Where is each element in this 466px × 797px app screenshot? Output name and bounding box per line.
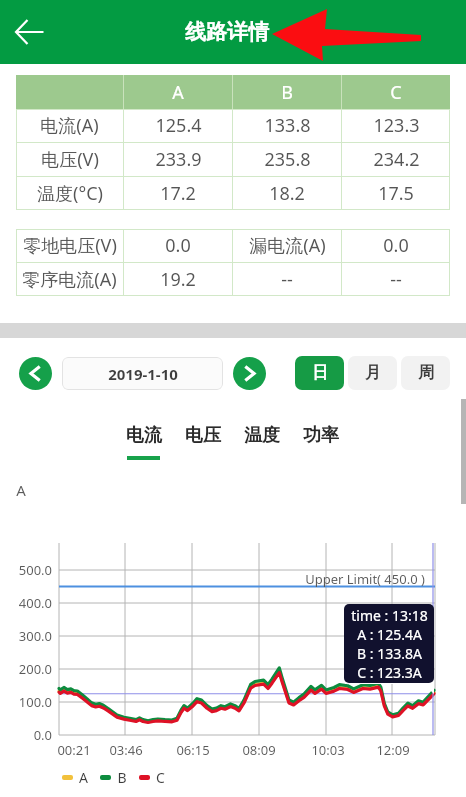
staticText: 月 [365,363,381,383]
staticText: 0.0 [0,726,52,744]
button[interactable]: Previous day [19,357,52,390]
button[interactable]: 周 [401,356,450,390]
staticText: 500.0 [0,561,52,579]
staticText: 日 [312,363,328,383]
staticText: 123.3 [373,113,420,138]
staticText: C [390,80,402,105]
staticText: 功率 [303,424,339,447]
staticText: B : 133.8A [357,644,422,663]
staticText: 10:03 [298,741,358,759]
button[interactable]: Next day [233,357,266,390]
staticText: 12:09 [363,741,423,759]
button[interactable]: 功率 [291,424,350,460]
staticText: A [79,768,88,787]
staticText: B [117,768,127,787]
staticText: -- [390,267,402,292]
staticText: 17.2 [160,181,196,206]
staticText: 漏电流(A) [249,233,326,258]
staticText: A : 125.4A [357,625,422,644]
staticText: 温度 [244,424,280,447]
staticText: -- [281,267,293,292]
staticText: B [281,80,293,105]
staticText: 08:09 [229,741,289,759]
button[interactable]: 电压 [173,424,232,460]
staticText: Upper Limit( 450.0 ) [305,570,425,588]
button[interactable]: 2019-1-10 [62,357,223,390]
staticText: 300.0 [0,627,52,645]
button[interactable]: 日 [295,356,344,390]
staticText: 19.2 [160,267,196,292]
staticText: 线路详情 [185,19,269,45]
staticText: time : 13:18 [351,606,428,625]
button[interactable]: 温度 [232,424,291,460]
staticText: C : 123.3A [357,663,422,682]
staticText: 125.4 [155,113,202,138]
staticText: 电压(V) [41,147,99,172]
staticText: 电流 [126,424,162,447]
staticText: 0.0 [165,233,191,258]
button[interactable]: 月 [348,356,397,390]
staticText: A [172,80,184,105]
staticText: 温度(°C) [37,181,103,206]
staticText: 2019-1-10 [108,364,178,384]
staticText: 200.0 [0,660,52,678]
staticText: C [156,768,165,787]
staticText: 零地电压(V) [23,233,117,258]
staticText: 17.5 [378,181,414,206]
staticText: 0.0 [383,233,409,258]
staticText: 03:46 [96,741,156,759]
staticText: 电压 [185,424,221,447]
staticText: 18.2 [269,181,305,206]
staticText: 零序电流(A) [22,267,117,292]
staticText: 电流(A) [40,113,99,138]
staticText: 400.0 [0,594,52,612]
staticText: 100.0 [0,693,52,711]
staticText: 133.8 [264,113,311,138]
staticText: 06:15 [163,741,223,759]
staticText: 234.2 [373,147,420,172]
staticText: 周 [418,363,434,383]
staticText: A [16,480,26,500]
button[interactable]: 电流 [114,424,173,460]
staticText: 233.9 [155,147,202,172]
button[interactable]: Back [6,8,54,56]
staticText: 235.8 [264,147,311,172]
staticText: 00:21 [44,741,104,759]
